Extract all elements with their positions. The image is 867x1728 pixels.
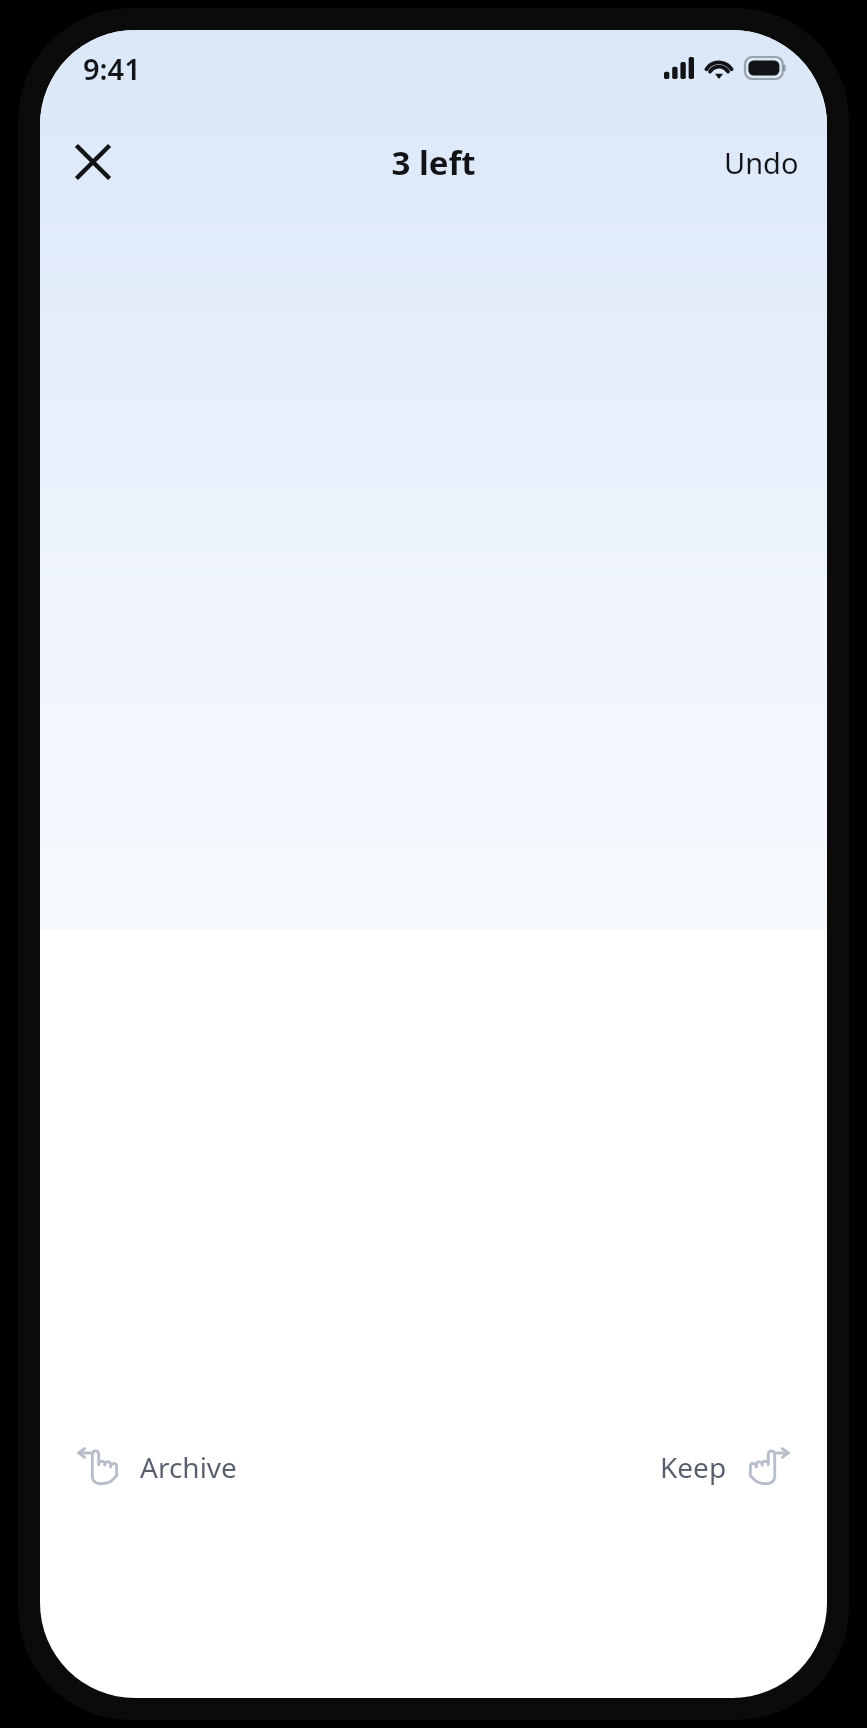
staticText: 9:41 xyxy=(83,49,141,88)
button[interactable]: Undo xyxy=(710,133,813,192)
staticText: 3 left xyxy=(391,140,476,185)
button[interactable]: Archive xyxy=(64,1432,251,1502)
staticText: Undo xyxy=(724,143,799,182)
button[interactable]: Keep xyxy=(646,1432,803,1502)
staticText: Keep xyxy=(660,1448,727,1486)
staticText: Archive xyxy=(140,1448,237,1486)
button[interactable]: Close xyxy=(62,131,124,193)
